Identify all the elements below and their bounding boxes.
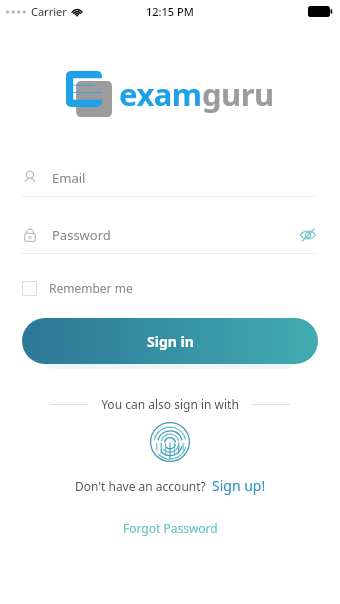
staticText: Sign in (147, 332, 194, 351)
staticText: Carrier (31, 4, 67, 19)
button[interactable]: Show password (298, 225, 318, 245)
button[interactable]: Password (22, 223, 318, 254)
staticText: Forgot Password (123, 520, 218, 536)
button[interactable]: Forgot Password (119, 516, 222, 540)
staticText: Email (52, 169, 318, 187)
button[interactable]: Sign up! (212, 476, 266, 495)
button[interactable]: Remember me (22, 280, 133, 296)
staticText: 12:15 PM (146, 4, 194, 19)
staticText: Remember me (49, 280, 133, 296)
staticText: You can also sign in with (88, 396, 252, 412)
staticText: Sign up! (212, 476, 266, 495)
button[interactable]: Sign in (22, 318, 318, 364)
staticText: Don't have an account? (75, 478, 206, 494)
button[interactable]: Email (22, 166, 318, 197)
staticText: guru (202, 73, 274, 115)
staticText: Password (52, 226, 298, 244)
staticText: exam (119, 73, 202, 115)
button[interactable]: Sign in with fingerprint (150, 422, 190, 462)
